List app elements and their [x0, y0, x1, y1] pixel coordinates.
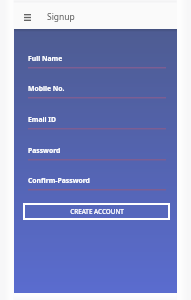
- button[interactable]: CREATE ACCOUNT: [23, 203, 170, 220]
- staticText: Signup: [47, 11, 75, 23]
- button[interactable]: Email ID: [28, 111, 166, 134]
- staticText: Confirm-Password: [28, 176, 90, 185]
- staticText: Password: [28, 146, 61, 155]
- staticText: Mobile No.: [28, 84, 65, 93]
- button[interactable]: Password: [28, 142, 166, 165]
- button[interactable]: Open navigation menu: [16, 6, 39, 29]
- staticText: Full Name: [28, 54, 63, 63]
- staticText: CREATE ACCOUNT: [70, 207, 124, 216]
- button[interactable]: Mobile No.: [28, 80, 166, 103]
- button[interactable]: Full Name: [28, 50, 166, 73]
- staticText: Email ID: [28, 115, 56, 124]
- button[interactable]: Confirm-Password: [28, 172, 166, 195]
